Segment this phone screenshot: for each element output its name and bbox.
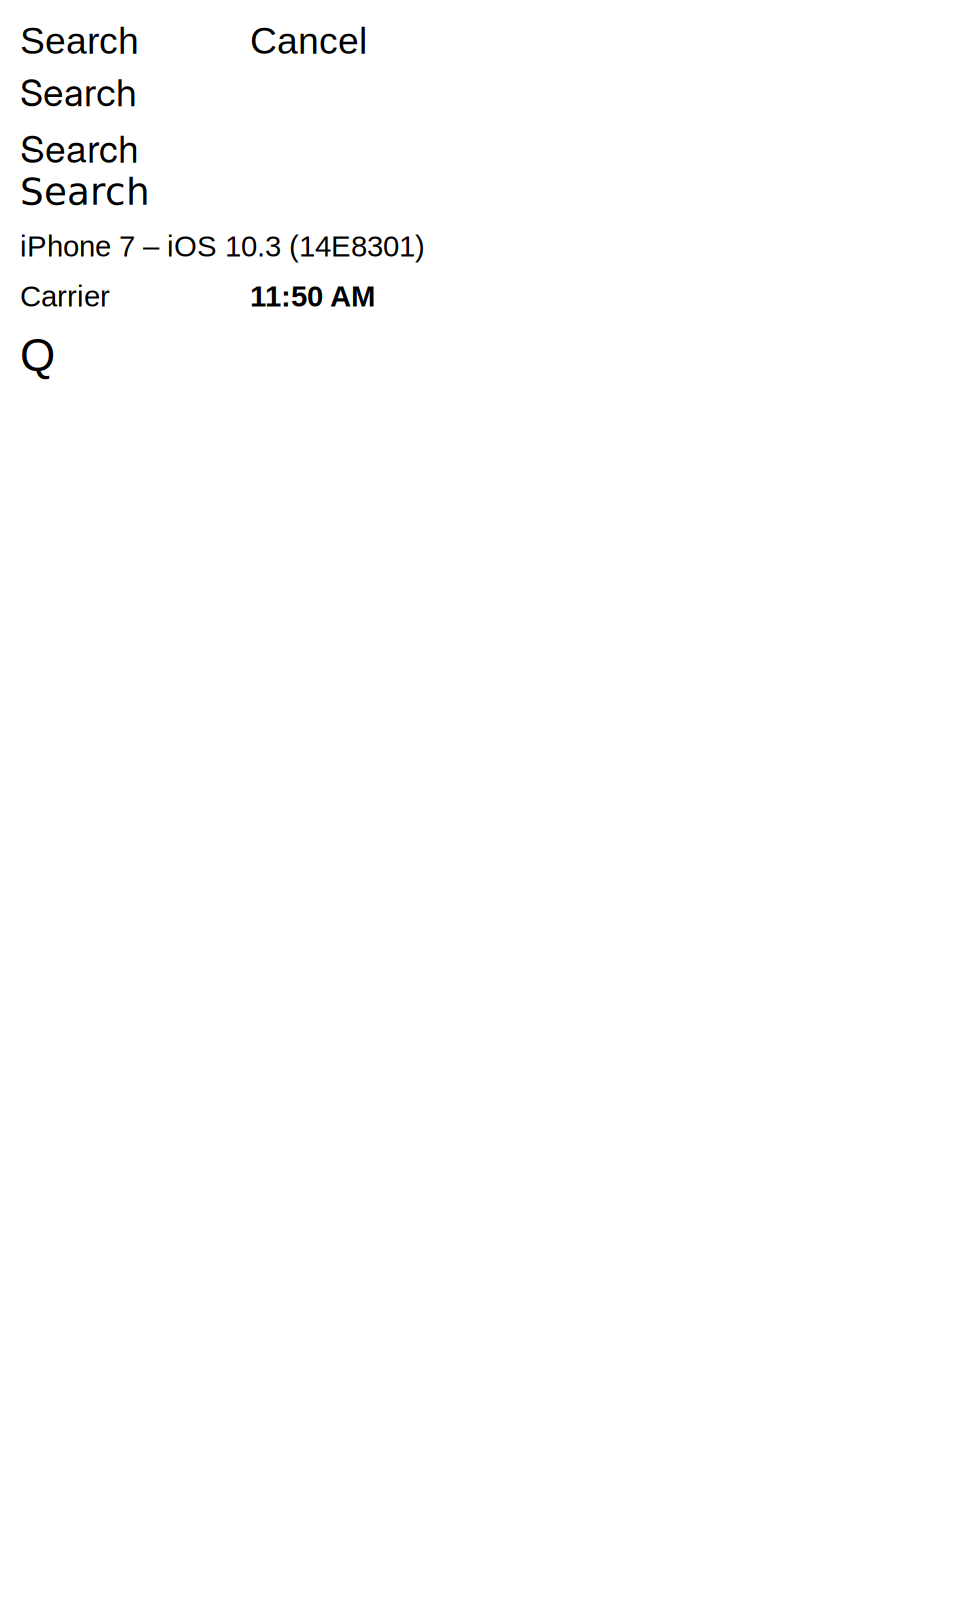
staticText: 11:50 AM	[250, 280, 375, 313]
staticText: iPhone 7 – iOS 10.3 (14E8301)	[20, 230, 425, 263]
staticText: Search	[20, 170, 150, 213]
staticText: Carrier	[20, 280, 110, 313]
staticText: Search	[20, 120, 139, 173]
staticText: Search	[20, 70, 137, 115]
staticText: Search	[20, 20, 139, 62]
staticText: Q	[20, 330, 55, 381]
staticText: Cancel	[250, 20, 367, 62]
